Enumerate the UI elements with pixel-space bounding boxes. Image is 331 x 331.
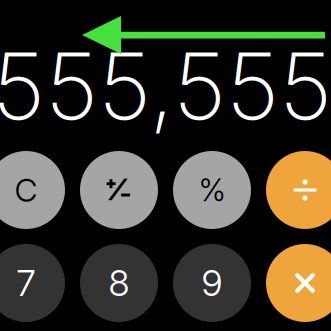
button[interactable]: Multiply [266,244,331,322]
staticText: 8 [108,261,129,305]
staticText: 9 [201,261,222,305]
button[interactable]: Percent [173,151,251,229]
staticText: % [198,171,225,208]
staticText: 555,555 [0,30,331,142]
staticText: 7 [16,261,35,305]
button[interactable]: 8 [80,244,158,322]
button[interactable]: 7 [0,244,65,322]
button[interactable]: Divide [266,151,331,229]
button[interactable]: Plus Minus [80,151,158,229]
button[interactable]: 9 [173,244,251,322]
staticText: C [14,171,37,209]
button[interactable]: Clear [0,151,65,229]
